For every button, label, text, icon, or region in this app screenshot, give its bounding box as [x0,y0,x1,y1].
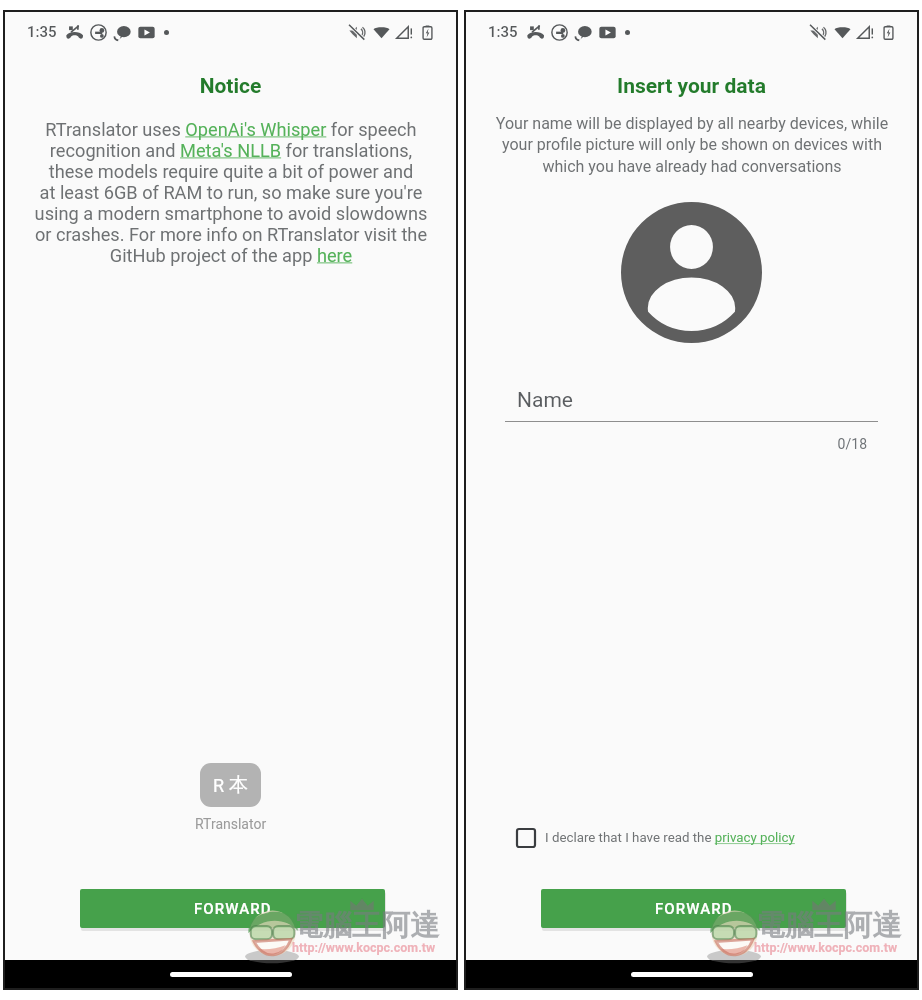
button[interactable]: FORWARD [80,889,385,928]
button[interactable]: RTranslator app icon [200,763,261,807]
staticText: http://www.kocpc.com.tw [754,940,898,955]
staticText: FORWARD [655,900,733,918]
staticText: Notice [5,74,456,99]
staticText: R [213,775,225,796]
staticText: I declare that I have read the privacy p… [545,830,795,846]
staticText: 電腦王阿達 [294,907,439,944]
staticText: FORWARD [194,900,272,918]
staticText: RTranslator [195,816,267,832]
staticText: Insert your data [466,74,917,99]
staticText: Name [517,388,573,413]
button[interactable]: I declare that I have read the privacy p… [516,828,795,848]
button[interactable]: FORWARD [541,889,846,928]
staticText: 電腦王阿達 [756,907,901,944]
button[interactable]: Home [631,972,753,977]
staticText: http://www.kocpc.com.tw [292,940,436,955]
button[interactable]: Profile picture [621,202,762,343]
button[interactable]: Home [170,972,292,977]
staticText: 1:35 [488,23,518,41]
staticText: Your name will be displayed by all nearb… [482,114,902,176]
staticText: 本 [229,773,248,797]
staticText: 1:35 [27,23,57,41]
staticText: 0/18 [505,436,867,452]
staticText: RTranslator uses OpenAi's Whisper for sp… [21,119,441,266]
